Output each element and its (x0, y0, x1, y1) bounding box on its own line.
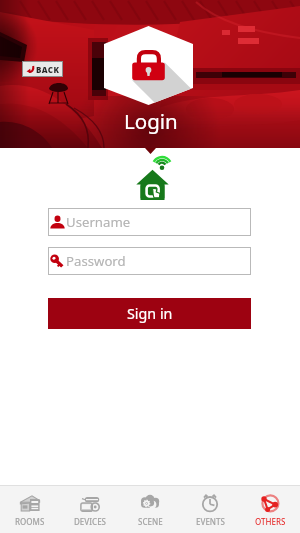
staticText: OTHERS (255, 516, 286, 527)
button[interactable]: EVENTS (180, 486, 240, 533)
staticText: DEVICES (74, 516, 106, 527)
button[interactable]: ROOMS (0, 486, 60, 533)
button[interactable]: SCENE (120, 486, 180, 533)
button[interactable]: Sign in (48, 298, 251, 329)
staticText: Sign in (127, 304, 173, 323)
staticText: Username (66, 213, 131, 231)
staticText: Login (124, 107, 178, 135)
button[interactable]: Password (48, 247, 251, 275)
staticText: EVENTS (196, 516, 225, 527)
staticText: ROOMS (15, 516, 45, 527)
button[interactable]: Username (48, 208, 251, 236)
staticText: BACK (36, 64, 60, 75)
staticText: Password (66, 252, 126, 270)
button[interactable]: DEVICES (60, 486, 120, 533)
staticText: SCENE (138, 516, 163, 527)
button[interactable]: OTHERS (240, 486, 300, 533)
button[interactable]: Back (22, 61, 63, 77)
